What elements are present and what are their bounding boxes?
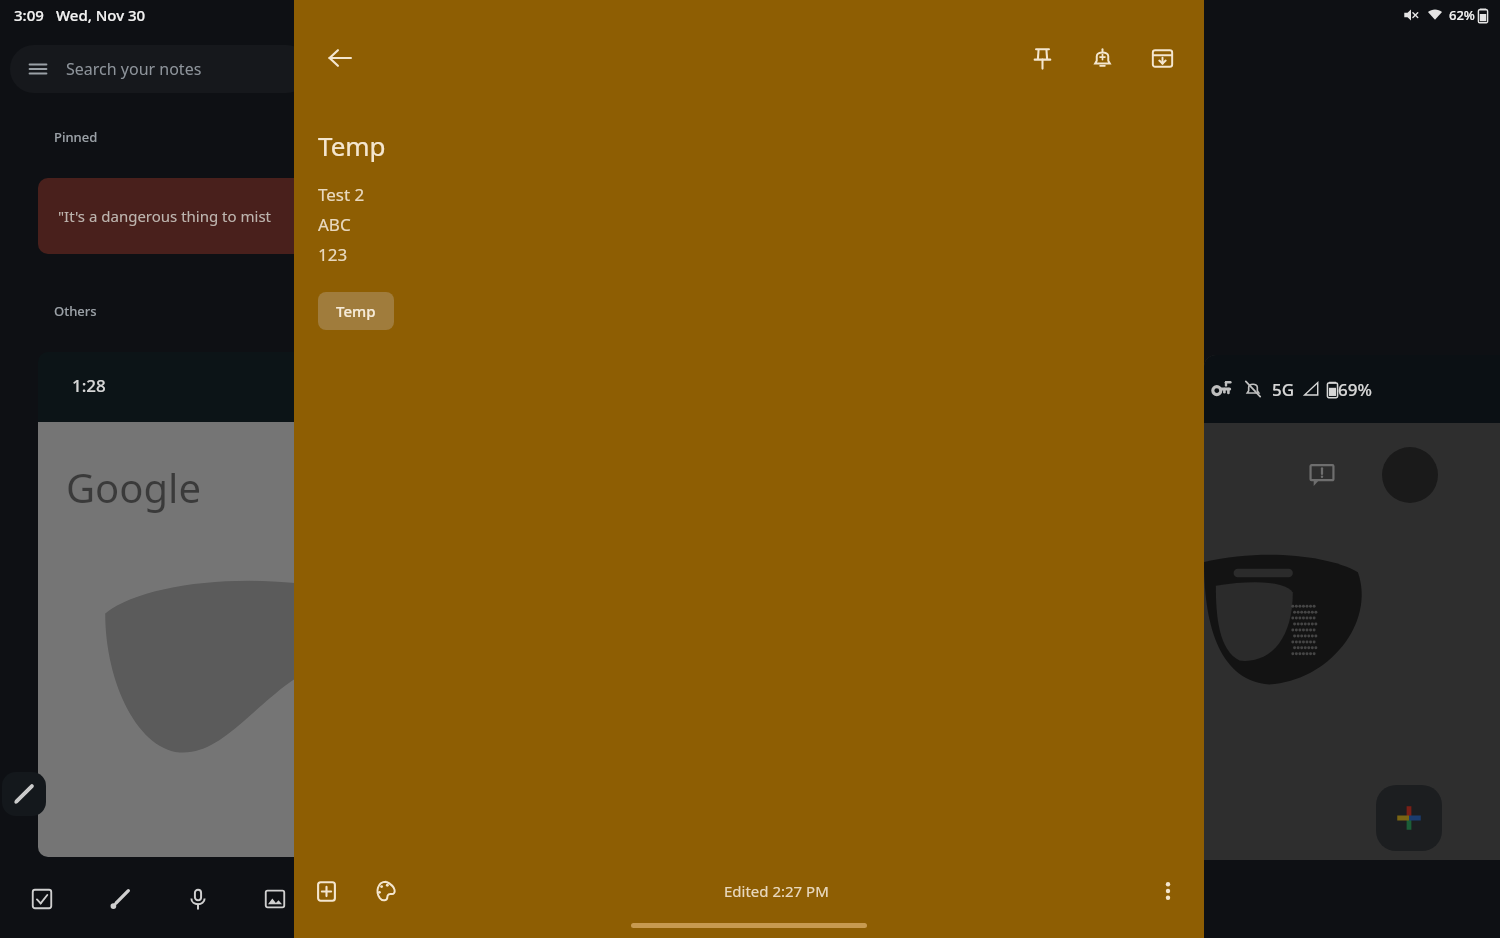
button[interactable]: Add item: [304, 869, 348, 913]
staticText: 62%: [1449, 6, 1475, 24]
button[interactable]: Pin note: [1018, 34, 1066, 82]
staticText: 1:28: [72, 374, 106, 397]
button[interactable]: Archive: [1138, 34, 1186, 82]
staticText: Edited 2:27 PM: [724, 881, 829, 901]
button[interactable]: Back: [316, 34, 364, 82]
button[interactable]: More options: [1146, 869, 1190, 913]
button[interactable]: Feedback: [1302, 455, 1342, 495]
staticText: Others: [54, 302, 97, 320]
staticText: 5G: [1272, 378, 1295, 401]
button[interactable]: New drawing: [100, 879, 140, 919]
button[interactable]: Change color: [364, 869, 408, 913]
staticText: ABC: [318, 213, 351, 236]
staticText: 69%: [1338, 378, 1372, 401]
button[interactable]: New image note: [256, 879, 294, 919]
staticText: Temp: [336, 301, 376, 321]
button[interactable]: Search your notes: [10, 45, 310, 93]
button[interactable]: Account: [1382, 447, 1438, 503]
staticText: Google: [66, 460, 201, 514]
button[interactable]: Reminder: [1078, 34, 1126, 82]
button[interactable]: 1:28: [38, 352, 598, 857]
staticText: Test 2: [318, 183, 365, 206]
button[interactable]: Add: [1376, 785, 1442, 851]
button[interactable]: Temp: [318, 292, 394, 330]
staticText: Temp: [318, 128, 386, 163]
button[interactable]: New note: [2, 772, 46, 816]
staticText: "It's a dangerous thing to mist: [58, 206, 272, 226]
button[interactable]: New list: [22, 879, 62, 919]
staticText: Pinned: [54, 128, 98, 146]
staticText: 123: [318, 243, 348, 266]
staticText: Wed, Nov 30: [56, 5, 146, 25]
staticText: Search your notes: [66, 58, 202, 80]
button[interactable]: "It's a dangerous thing to mist: [38, 178, 598, 254]
button[interactable]: New voice note: [178, 879, 218, 919]
staticText: 3:09: [14, 5, 44, 25]
